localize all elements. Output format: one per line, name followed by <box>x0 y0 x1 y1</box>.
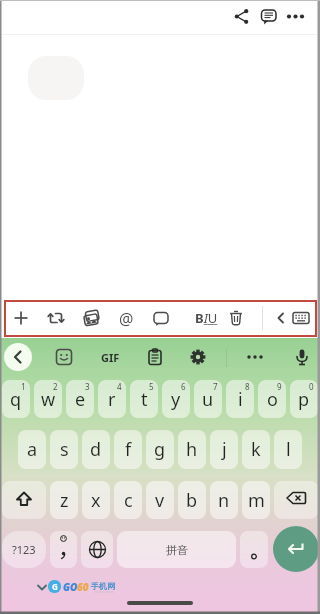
staticText: w <box>41 387 56 412</box>
button[interactable]: l <box>274 430 302 469</box>
staticText: z <box>60 488 69 513</box>
button[interactable] <box>12 309 30 327</box>
staticText: m <box>248 488 265 513</box>
button[interactable] <box>287 8 304 25</box>
button[interactable] <box>272 309 290 327</box>
staticText: p <box>298 387 310 412</box>
button[interactable] <box>82 309 100 327</box>
staticText: x <box>91 488 101 513</box>
staticText: n <box>218 488 230 513</box>
staticText: BIU <box>195 309 218 327</box>
staticText: 6 <box>181 381 186 392</box>
staticText: u <box>202 387 214 412</box>
button[interactable] <box>146 348 164 366</box>
button[interactable]: r <box>98 380 126 418</box>
staticText: o <box>267 387 278 412</box>
button[interactable] <box>292 309 310 327</box>
staticText: G <box>52 581 58 592</box>
staticText: 1 <box>21 381 26 392</box>
button[interactable] <box>273 526 319 572</box>
button[interactable]: v <box>146 481 174 519</box>
staticText: l <box>286 437 291 462</box>
staticText: 3 <box>85 381 90 392</box>
button[interactable] <box>189 348 207 366</box>
button[interactable]: a <box>18 430 46 469</box>
button[interactable]: t <box>130 380 158 418</box>
button[interactable]: o <box>258 380 286 418</box>
button[interactable] <box>152 309 170 327</box>
button[interactable]: c <box>114 481 142 519</box>
button[interactable]: i <box>226 380 254 418</box>
button[interactable]: h <box>178 430 206 469</box>
staticText: 9 <box>277 381 282 392</box>
staticText: 0 <box>309 381 314 392</box>
button[interactable] <box>47 309 65 327</box>
button[interactable] <box>233 8 250 25</box>
staticText: g <box>154 437 166 462</box>
staticText: s <box>60 437 69 462</box>
button[interactable]: n <box>210 481 238 519</box>
button[interactable] <box>227 309 245 327</box>
button[interactable] <box>4 343 32 371</box>
staticText: 拼音 <box>166 543 188 557</box>
button[interactable]: z <box>50 481 78 519</box>
button[interactable] <box>246 348 264 366</box>
staticText: 手机网 <box>91 581 115 591</box>
button[interactable] <box>50 531 77 568</box>
button[interactable]: w <box>34 380 62 418</box>
staticText: k <box>251 437 261 462</box>
staticText: i <box>238 387 243 412</box>
staticText: a <box>27 437 38 462</box>
button[interactable]: b <box>178 481 206 519</box>
staticText: 7 <box>213 381 218 392</box>
staticText: 2 <box>53 381 58 392</box>
button[interactable]: s <box>50 430 78 469</box>
button[interactable]: @ <box>117 308 135 328</box>
staticText: h <box>186 437 198 462</box>
button[interactable]: g <box>146 430 174 469</box>
staticText: 8 <box>245 381 250 392</box>
staticText: b <box>186 488 198 513</box>
button[interactable]: p <box>290 380 318 418</box>
button[interactable]: j <box>210 430 238 469</box>
staticText: v <box>155 488 165 513</box>
button[interactable]: x <box>82 481 110 519</box>
staticText: GIF <box>101 350 120 365</box>
button[interactable] <box>81 531 113 568</box>
staticText: 60 <box>77 580 89 594</box>
button[interactable]: m <box>242 481 270 519</box>
staticText: j <box>222 437 227 462</box>
button[interactable]: d <box>82 430 110 469</box>
staticText: GO <box>63 580 78 594</box>
button[interactable]: k <box>242 430 270 469</box>
staticText: d <box>90 437 102 462</box>
button[interactable]: ?123 <box>2 531 46 568</box>
staticText: y <box>171 387 181 412</box>
button[interactable] <box>2 481 46 519</box>
button[interactable]: e <box>66 380 94 418</box>
button[interactable]: f <box>114 430 142 469</box>
staticText: 5 <box>149 381 154 392</box>
button[interactable] <box>260 8 277 25</box>
staticText: ?123 <box>12 542 36 557</box>
button[interactable]: y <box>162 380 190 418</box>
button[interactable] <box>240 531 268 568</box>
staticText: e <box>75 387 86 412</box>
staticText: c <box>124 488 133 513</box>
staticText: t <box>141 387 148 412</box>
staticText: f <box>125 437 132 462</box>
button[interactable] <box>293 348 311 366</box>
button[interactable] <box>55 348 73 366</box>
staticText: q <box>10 387 22 412</box>
button[interactable]: u <box>194 380 222 418</box>
button[interactable]: q <box>2 380 30 418</box>
button[interactable]: 拼音 <box>117 531 236 568</box>
button[interactable]: GIF <box>96 347 124 367</box>
staticText: 4 <box>117 381 122 392</box>
staticText: @ <box>119 308 134 328</box>
staticText: r <box>108 387 116 412</box>
button[interactable] <box>274 481 318 519</box>
button[interactable]: BIU <box>190 307 222 329</box>
